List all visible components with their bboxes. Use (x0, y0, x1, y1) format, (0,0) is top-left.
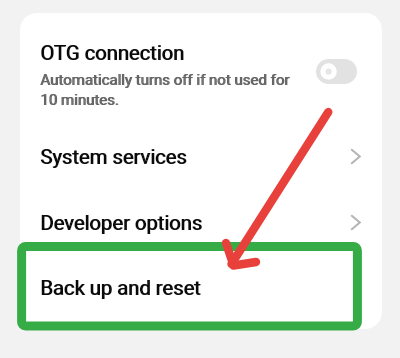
button[interactable]: Developer options (19, 190, 378, 255)
staticText: System services (40, 145, 187, 169)
staticText: Developer options (40, 211, 202, 235)
button[interactable]: Back up and reset (19, 255, 378, 321)
button[interactable]: OTG connection switch, off (316, 59, 357, 84)
staticText: OTG connection (40, 41, 184, 65)
staticText: Back up and reset (40, 276, 201, 300)
staticText: Developer options (41, 211, 203, 235)
staticText: System services (41, 145, 188, 169)
staticText: OTG connection (41, 41, 185, 65)
staticText: Automatically turns off if not used for … (41, 71, 305, 108)
staticText: Automatically turns off if not used for … (40, 71, 304, 108)
button[interactable]: OTG connection (19, 13, 378, 124)
button[interactable]: System services (19, 124, 378, 189)
staticText: Back up and reset (41, 276, 202, 300)
